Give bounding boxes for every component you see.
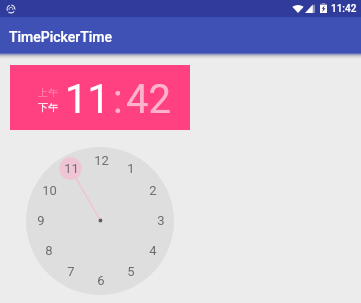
staticText: TimePickerTime: [9, 29, 113, 45]
staticText: 7: [67, 264, 75, 279]
staticText: 12: [94, 153, 109, 168]
staticText: 11: [64, 161, 79, 176]
button[interactable]: 3: [150, 209, 172, 231]
button[interactable]: 6: [90, 269, 112, 291]
staticText: 8: [45, 243, 53, 258]
button[interactable]: 1: [120, 157, 142, 179]
staticText: 2: [149, 183, 157, 198]
button[interactable]: 8: [38, 239, 60, 261]
staticText: 上午: [38, 86, 58, 99]
staticText: 11: [65, 76, 110, 123]
staticText: 6: [97, 273, 105, 288]
button[interactable]: Clock dial: [26, 147, 174, 295]
button[interactable]: 9: [30, 209, 52, 231]
staticText: 42: [126, 76, 171, 123]
button[interactable]: 4: [142, 239, 164, 261]
button[interactable]: 12: [90, 149, 112, 171]
staticText: 3: [157, 213, 165, 228]
staticText: 1: [127, 161, 135, 176]
staticText: 5: [127, 264, 135, 279]
button[interactable]: 上午: [38, 86, 58, 99]
button[interactable]: 11: [60, 157, 82, 179]
staticText: 4: [149, 243, 157, 258]
button[interactable]: 下午: [38, 101, 58, 114]
staticText: 下午: [38, 101, 58, 114]
button[interactable]: TimePickerTime: [0, 17, 361, 54]
button[interactable]: 5: [120, 260, 142, 282]
button[interactable]: 2: [142, 179, 164, 201]
button[interactable]: 42: [126, 76, 171, 123]
staticText: 9: [37, 213, 45, 228]
button[interactable]: 7: [60, 260, 82, 282]
button[interactable]: 11: [65, 76, 110, 123]
button[interactable]: 10: [38, 179, 60, 201]
staticText: 11:42: [331, 3, 357, 15]
staticText: 10: [42, 183, 57, 198]
staticText: :: [113, 76, 123, 123]
